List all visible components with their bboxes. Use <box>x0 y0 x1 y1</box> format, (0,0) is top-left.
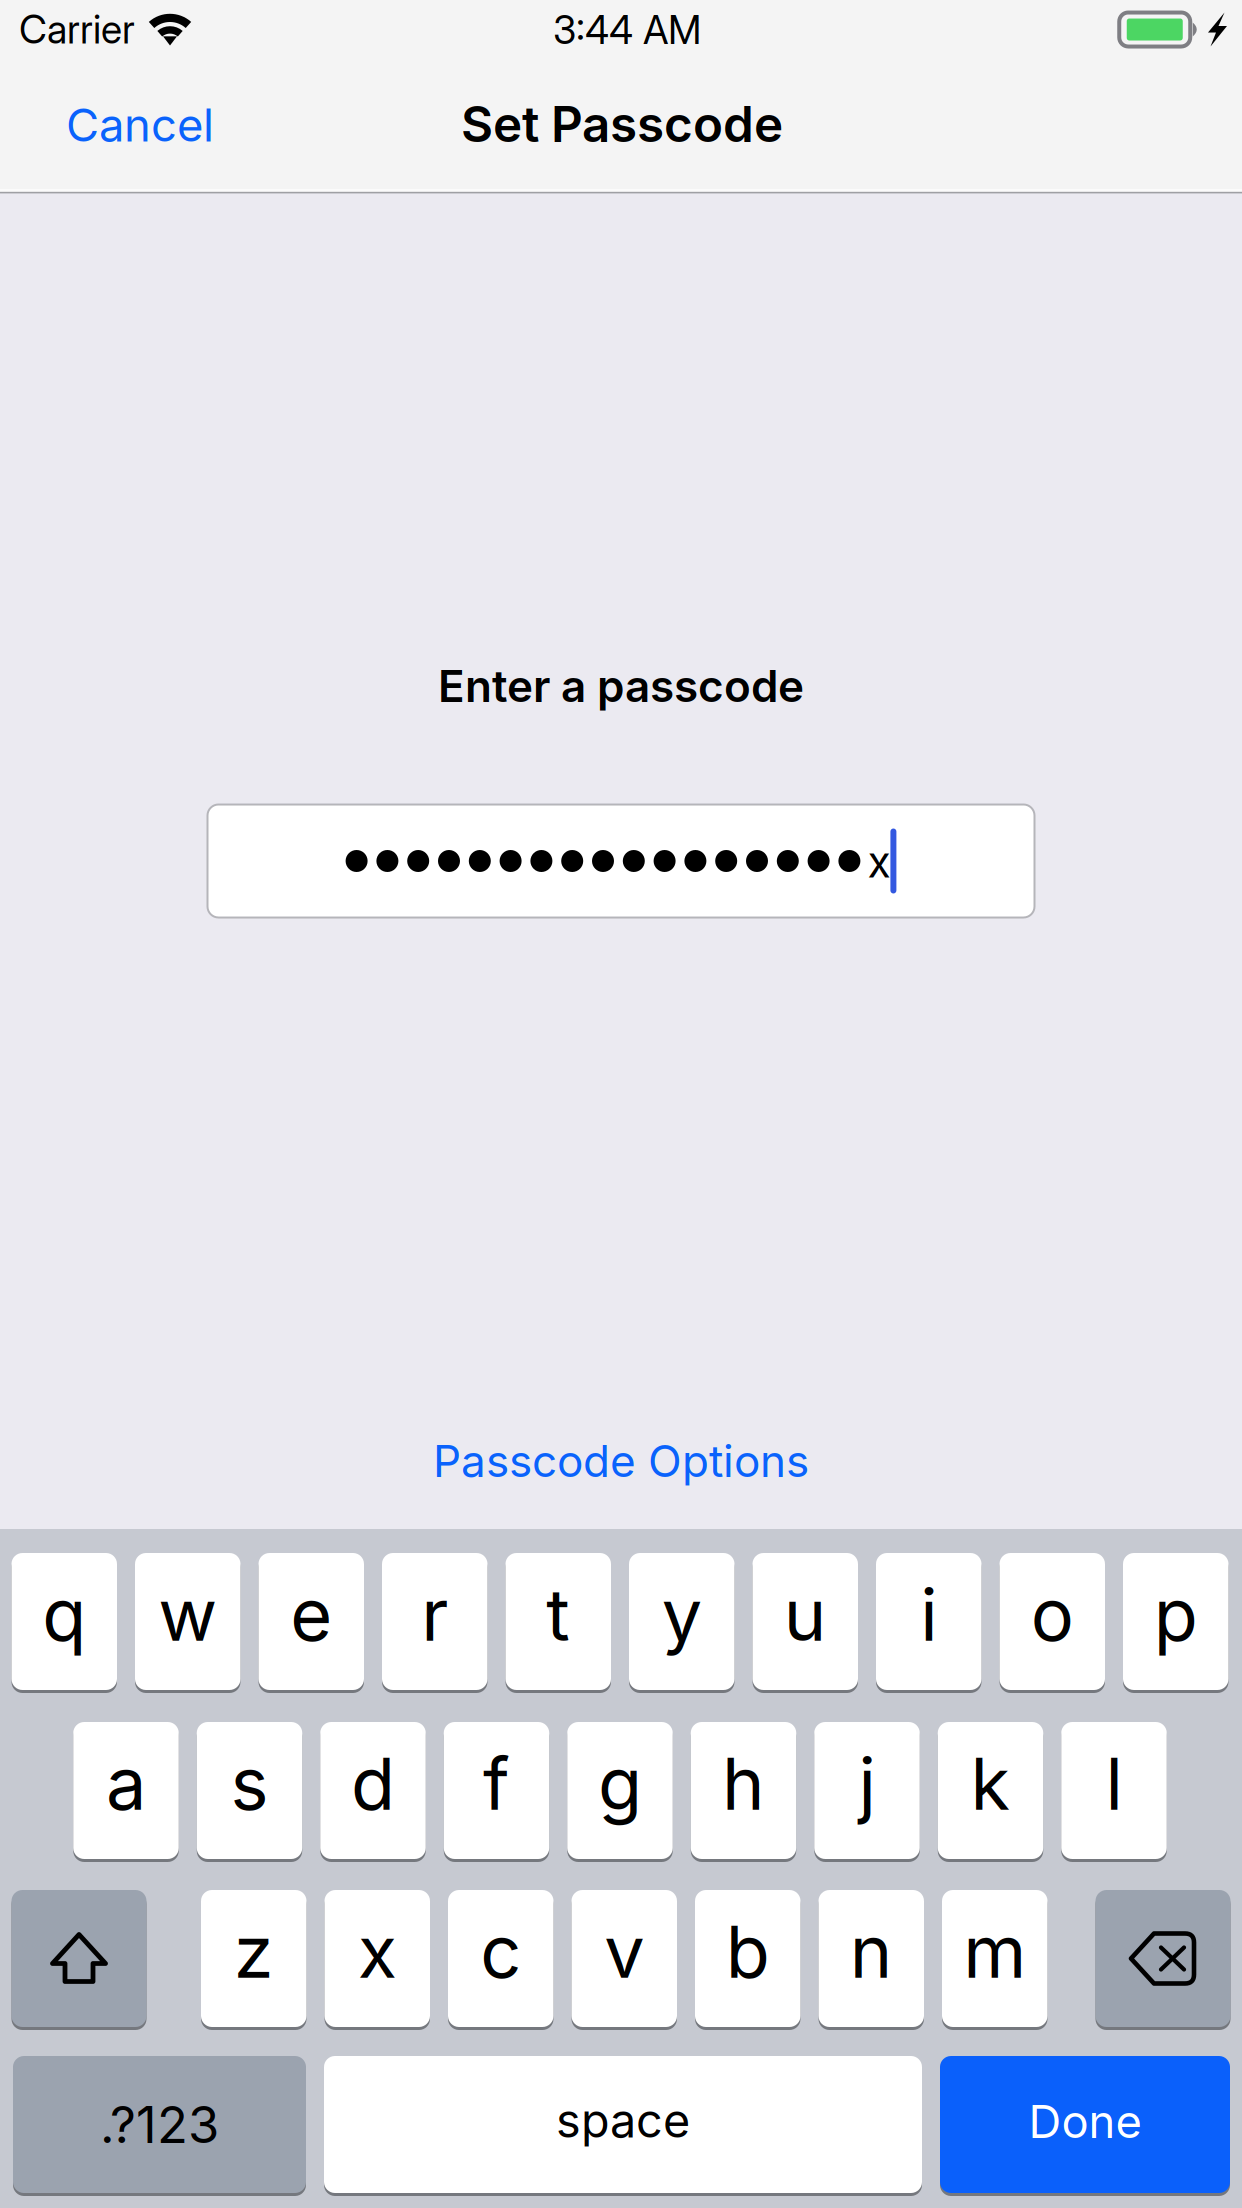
button[interactable]: j <box>814 1720 920 1860</box>
button[interactable]: z <box>201 1888 306 2028</box>
staticText: u <box>784 1571 827 1658</box>
staticText: s <box>230 1740 268 1827</box>
staticText: d <box>351 1740 395 1827</box>
button[interactable]: l <box>1061 1720 1167 1860</box>
staticText: v <box>604 1908 644 1995</box>
button[interactable]: Shift <box>11 1888 146 2028</box>
button[interactable]: v <box>571 1888 677 2028</box>
button[interactable]: g <box>567 1720 673 1860</box>
staticText: i <box>920 1571 937 1658</box>
button[interactable]: .?123 <box>13 2054 306 2194</box>
staticText: k <box>970 1740 1010 1827</box>
button[interactable]: i <box>876 1551 981 1691</box>
button[interactable]: b <box>695 1888 800 2028</box>
staticText: Cancel <box>66 98 214 152</box>
button[interactable]: m <box>942 1888 1047 2028</box>
button[interactable]: space <box>324 2054 922 2194</box>
staticText: a <box>106 1740 146 1827</box>
button[interactable]: w <box>135 1551 240 1691</box>
staticText: Done <box>1028 2094 1141 2149</box>
staticText: Passcode Options <box>433 1434 809 1488</box>
button[interactable]: r <box>382 1551 487 1691</box>
staticText: t <box>546 1571 570 1658</box>
button[interactable]: k <box>938 1720 1043 1860</box>
staticText: m <box>963 1908 1026 1995</box>
button[interactable]: c <box>448 1888 553 2028</box>
staticText: p <box>1154 1571 1198 1658</box>
staticText: z <box>234 1908 274 1995</box>
button[interactable]: h <box>691 1720 796 1860</box>
staticText: q <box>42 1571 86 1658</box>
button[interactable]: Passcode Options <box>431 1431 811 1491</box>
staticText: w <box>158 1571 217 1658</box>
staticText: Enter a passcode <box>438 659 804 713</box>
staticText: x <box>867 836 890 888</box>
button[interactable]: a <box>73 1720 179 1860</box>
staticText: e <box>290 1571 332 1658</box>
staticText: x <box>358 1908 397 1995</box>
staticText: y <box>662 1571 702 1658</box>
button[interactable]: Cancel <box>64 98 216 152</box>
button[interactable]: d <box>320 1720 426 1860</box>
staticText: b <box>726 1908 770 1995</box>
staticText: r <box>421 1571 448 1658</box>
staticText: .?123 <box>100 2094 219 2155</box>
staticText: space <box>556 2092 690 2149</box>
staticText: 3:44 AM <box>553 7 701 53</box>
button[interactable]: n <box>818 1888 924 2028</box>
button[interactable]: t <box>505 1551 611 1691</box>
button[interactable]: s <box>197 1720 302 1860</box>
button[interactable]: y <box>629 1551 734 1691</box>
staticText: Set Passcode <box>461 94 783 154</box>
staticText: j <box>858 1740 875 1827</box>
button[interactable]: x <box>324 1888 430 2028</box>
button[interactable]: e <box>258 1551 364 1691</box>
button[interactable]: p <box>1123 1551 1228 1691</box>
button[interactable]: o <box>999 1551 1105 1691</box>
staticText: Carrier <box>19 6 135 53</box>
staticText: c <box>480 1908 521 1995</box>
staticText: g <box>598 1740 642 1827</box>
staticText: f <box>483 1740 510 1827</box>
staticText: n <box>850 1908 893 1995</box>
staticText: o <box>1031 1571 1074 1658</box>
button[interactable]: u <box>752 1551 858 1691</box>
staticText: l <box>1105 1740 1122 1827</box>
staticText: h <box>722 1740 765 1827</box>
button[interactable]: Delete <box>1095 1888 1230 2028</box>
button[interactable]: Done <box>940 2054 1230 2194</box>
button[interactable]: f <box>444 1720 549 1860</box>
button[interactable]: q <box>11 1551 117 1691</box>
